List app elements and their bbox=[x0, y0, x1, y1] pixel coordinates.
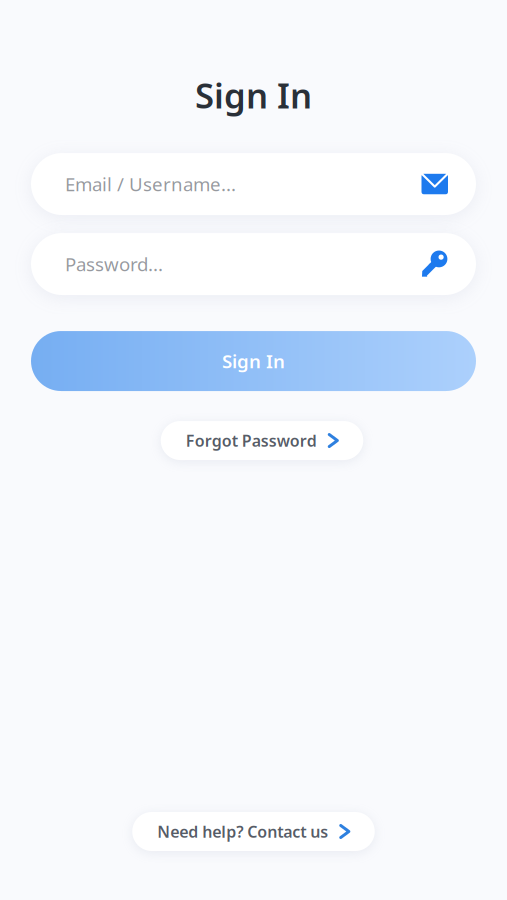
button[interactable]: Need help? Contact us bbox=[132, 812, 375, 851]
staticText: Sign In bbox=[222, 349, 285, 373]
staticText: Email / Username... bbox=[65, 172, 236, 196]
staticText: Password... bbox=[65, 252, 163, 276]
staticText: Forgot Password bbox=[186, 430, 317, 451]
staticText: Need help? Contact us bbox=[157, 821, 328, 842]
button[interactable]: Forgot Password bbox=[161, 421, 363, 460]
button[interactable]: Email / Username... bbox=[31, 153, 476, 215]
button[interactable]: Password... bbox=[31, 233, 476, 295]
staticText: Sign In bbox=[195, 72, 312, 118]
button[interactable]: Sign In bbox=[31, 331, 476, 391]
